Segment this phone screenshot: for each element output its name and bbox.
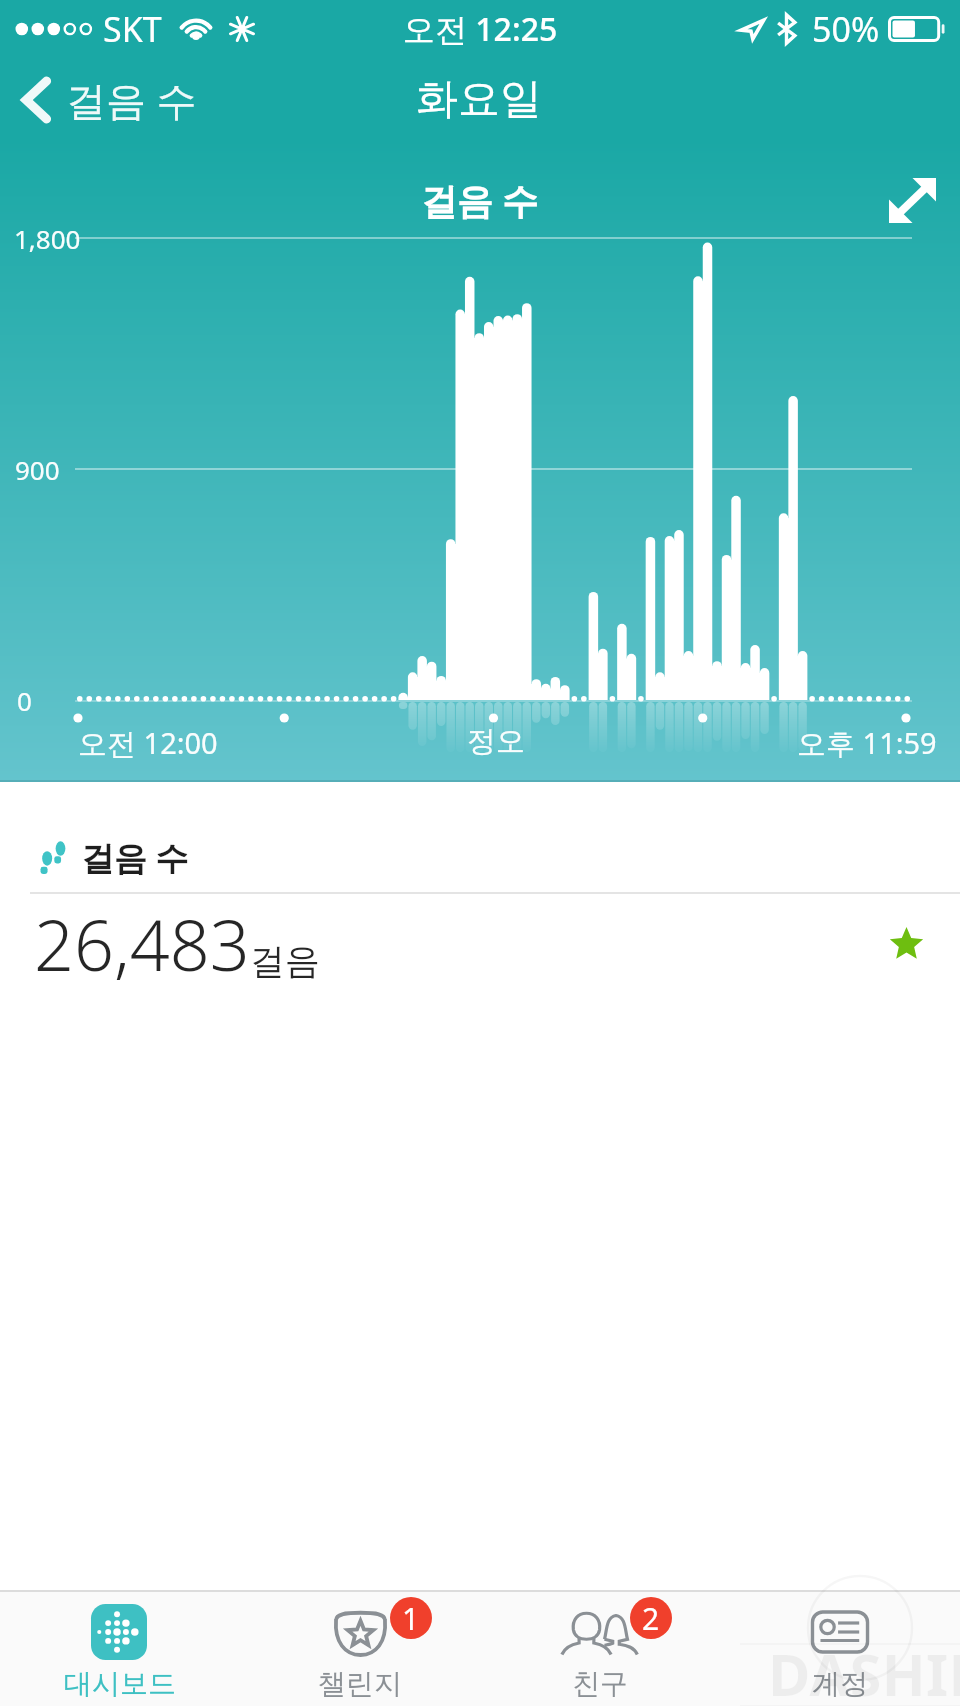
staticText: 26,483 [34,896,250,991]
button[interactable]: 2 [480,1592,720,1706]
staticText: 2 [642,1598,660,1639]
button[interactable]: 계정 [720,1592,960,1706]
staticText: 900 [15,452,60,487]
staticText: 챌린지 [318,1666,402,1701]
staticText: SKT [103,6,162,52]
staticText: 걸음 수 [81,835,189,880]
staticText: 걸음 수 [421,176,539,225]
button[interactable]: Expand chart [876,164,948,236]
staticText: 1,800 [14,221,81,256]
staticText: DASHIN [768,1634,960,1706]
staticText: 오후 11:59 [797,723,937,763]
button[interactable]: 걸음 수 [0,64,221,135]
staticText: 걸음 [250,939,320,983]
staticText: 친구 [572,1666,628,1701]
staticText: 50% [812,6,880,52]
button[interactable]: 대시보드 [0,1592,240,1706]
staticText: 오전 12:25 [403,7,558,51]
staticText: 0 [17,683,32,718]
staticText: 정오 [467,723,525,760]
staticText: 오전 12:00 [78,723,218,763]
staticText: 1 [402,1598,420,1639]
staticText: 계정 [812,1666,868,1701]
button[interactable]: 걸음 수 [0,782,960,992]
button[interactable]: 1 [240,1592,480,1706]
staticText: 대시보드 [64,1666,176,1701]
staticText: 화요일 [416,73,542,126]
staticText: 걸음 수 [66,72,197,127]
